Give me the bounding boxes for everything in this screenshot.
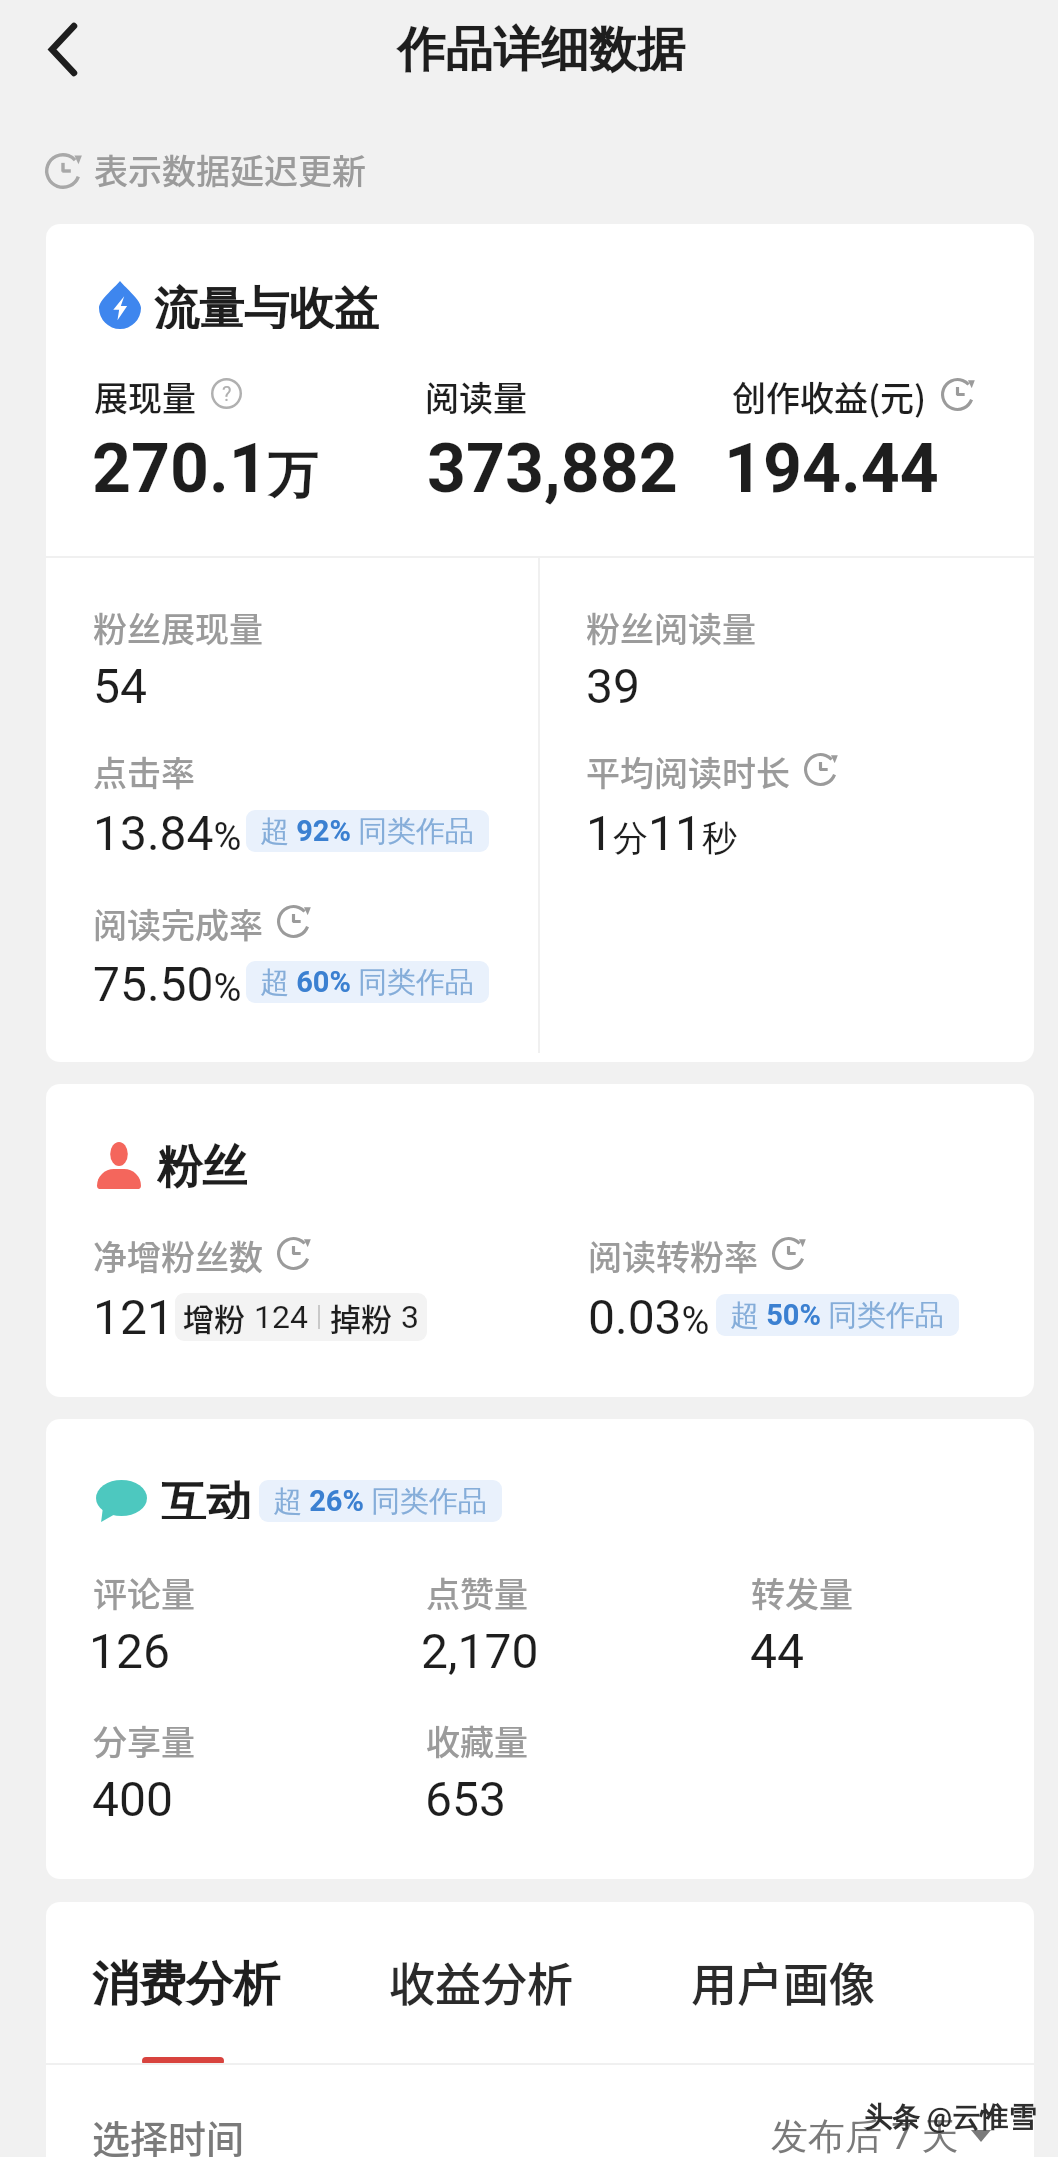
button[interactable]: 超 26% 同类作品 [259,1480,502,1522]
staticText: 194.44 [724,429,939,509]
staticText: 270.1万 [92,429,318,509]
staticText: 互动 [161,1475,251,1519]
staticText: 收益分析 [389,1948,573,2015]
staticText: 0.03% [588,1289,710,1345]
staticText: 超 26% 同类作品 [273,1483,488,1520]
staticText: 增粉 [183,1295,245,1340]
staticText: 粉丝展现量 [93,603,263,652]
button[interactable]: 指标说明 [211,378,242,409]
staticText: 点击率 [93,747,195,796]
button[interactable]: Back [16,6,110,94]
button[interactable]: 粉丝 [97,1139,247,1189]
staticText: 消费分析 [92,1955,280,2014]
button[interactable]: 超 92% 同类作品 [246,810,489,852]
staticText: 13.84% [93,805,242,861]
staticText: 653 [425,1771,506,1827]
staticText: ? [222,382,232,405]
staticText: 粉丝 [157,1139,247,1189]
button[interactable]: 增粉 [175,1293,427,1341]
button[interactable]: 收益分析 [381,1945,581,2017]
staticText: 创作收益(元) [732,372,927,421]
button[interactable]: 用户画像 [683,1945,883,2017]
staticText: 400 [92,1771,173,1827]
staticText: 选择时间 [92,2109,245,2157]
staticText: 粉丝阅读量 [586,603,756,652]
staticText: 44 [750,1623,804,1679]
staticText: 用户画像 [691,1948,875,2015]
button[interactable]: 选择时间 [86,2106,286,2157]
staticText: 头条 @云惟雪 [864,2100,1037,2135]
staticText: 54 [93,658,147,714]
staticText: 点赞量 [426,1568,528,1617]
staticText: 收藏量 [426,1716,528,1765]
staticText: 75.50% [93,956,242,1012]
staticText: 373,882 [427,429,678,509]
staticText: 超 60% 同类作品 [260,964,475,1001]
staticText: 126 [89,1623,170,1679]
button[interactable]: 消费分析 [86,1948,286,2020]
staticText: 阅读完成率 [93,899,263,948]
staticText: 分享量 [93,1716,195,1765]
staticText: 124 [254,1298,308,1336]
staticText: 3 [401,1298,419,1336]
staticText: 评论量 [93,1568,195,1617]
staticText: 流量与收益 [154,281,379,329]
staticText: 净增粉丝数 [93,1231,263,1280]
staticText: 超 92% 同类作品 [260,813,475,850]
staticText: 121 [93,1289,174,1345]
staticText: 2,170 [421,1623,539,1679]
staticText: 平均阅读时长 [586,747,790,796]
staticText: 39 [586,658,640,714]
staticText: 作品详细数据 [397,20,685,80]
staticText: 阅读量 [425,372,527,421]
staticText: 1分11秒 [586,805,737,861]
staticText: 展现量 [94,372,196,421]
staticText: 超 50% 同类作品 [730,1297,945,1334]
staticText: 掉粉 [330,1295,392,1340]
staticText: 阅读转粉率 [588,1231,758,1280]
button[interactable]: 超 60% 同类作品 [246,961,489,1003]
staticText: 表示数据延迟更新 [94,145,366,194]
button[interactable]: 超 50% 同类作品 [716,1294,959,1336]
staticText: 转发量 [751,1568,853,1617]
button[interactable]: 互动 [96,1479,502,1523]
button[interactable]: 流量与收益 [99,281,379,329]
button[interactable]: 发布后 7 天 [771,2106,991,2157]
staticText: 发布后 7 天 [771,2113,959,2157]
